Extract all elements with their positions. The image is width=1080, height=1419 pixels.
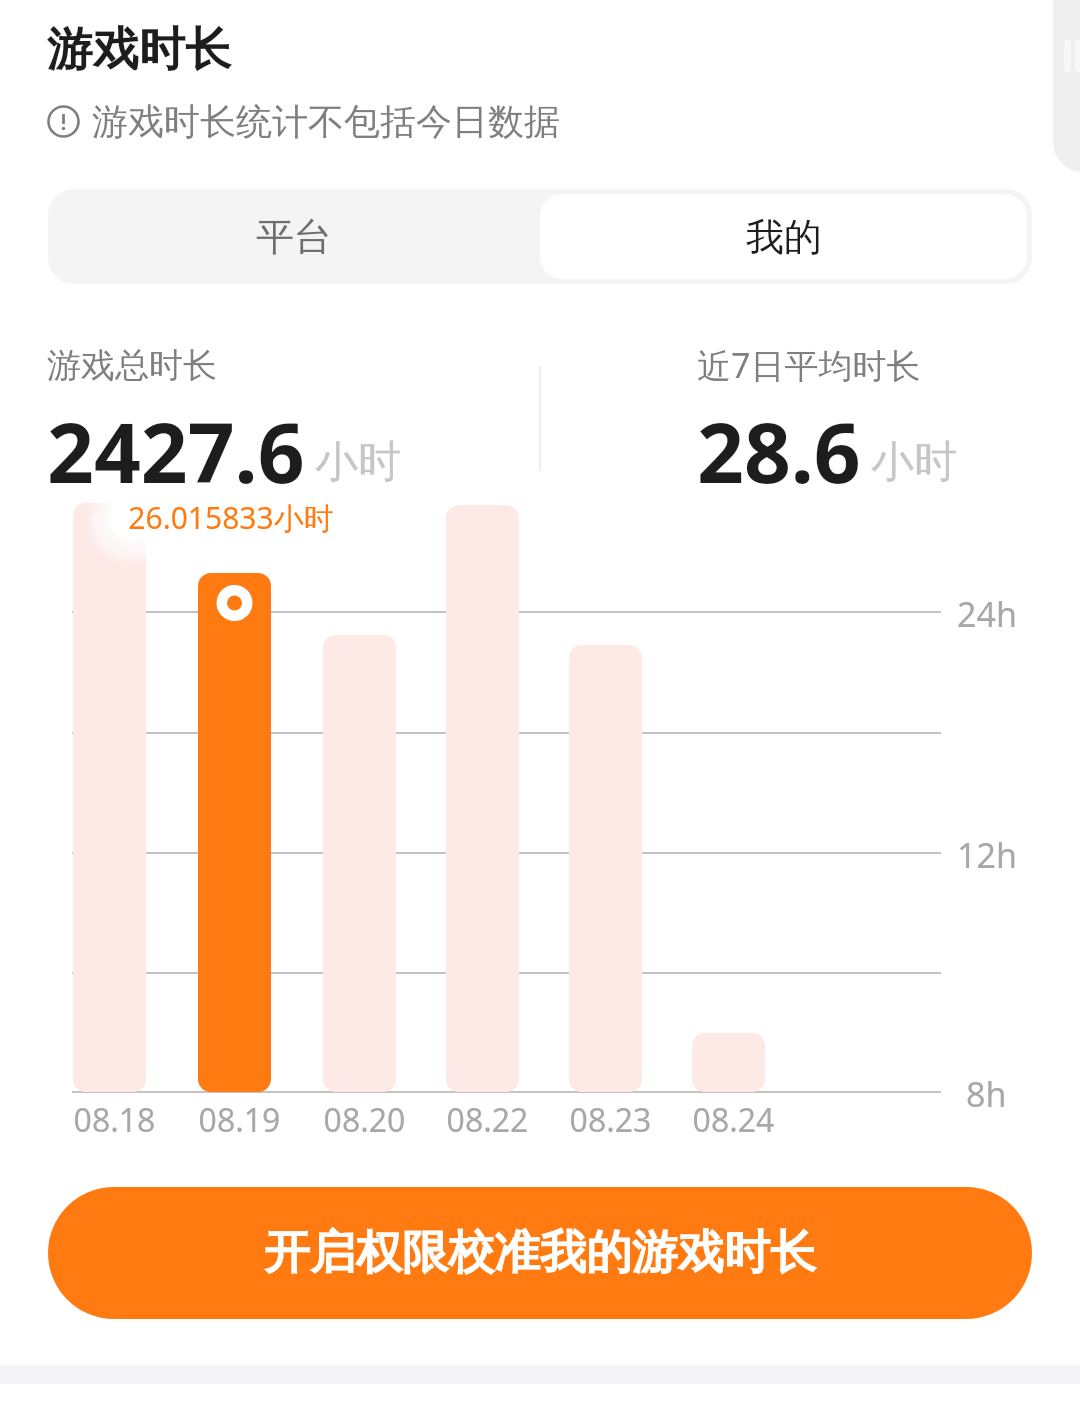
- button[interactable]: 平台: [48, 189, 540, 284]
- staticText: 08.22: [425, 1098, 550, 1142]
- staticText: 08.20: [302, 1098, 427, 1142]
- staticText: 平台: [256, 213, 332, 261]
- button[interactable]: 开启权限校准我的游戏时长: [48, 1187, 1032, 1319]
- staticText: 开启权限校准我的游戏时长: [264, 1224, 816, 1282]
- staticText: 近7日平均时长: [697, 342, 921, 388]
- staticText: 08.24: [671, 1098, 796, 1142]
- staticText: 小时: [315, 435, 401, 489]
- staticText: 08.18: [52, 1098, 177, 1142]
- staticText: 24h: [957, 591, 1017, 637]
- button[interactable]: More information: [47, 105, 80, 138]
- staticText: 小时: [871, 435, 957, 489]
- staticText: 2427.6: [47, 395, 305, 507]
- button[interactable]: Game time on 08.19: [198, 573, 271, 1092]
- staticText: 28.6: [697, 395, 861, 507]
- staticText: 8h: [966, 1071, 1007, 1117]
- button[interactable]: Game time on 08.24: [692, 1033, 765, 1092]
- staticText: 08.23: [548, 1098, 673, 1142]
- staticText: 游戏时长统计不包括今日数据: [92, 99, 560, 144]
- staticText: 26.015833小时: [109, 497, 353, 541]
- staticText: 我的: [746, 213, 822, 261]
- staticText: 游戏时长: [47, 21, 231, 79]
- staticText: 08.19: [177, 1098, 302, 1142]
- button[interactable]: 我的: [540, 194, 1027, 279]
- button[interactable]: Game time on 08.18: [73, 503, 146, 1092]
- staticText: 游戏总时长: [47, 344, 217, 387]
- staticText: 12h: [957, 832, 1017, 878]
